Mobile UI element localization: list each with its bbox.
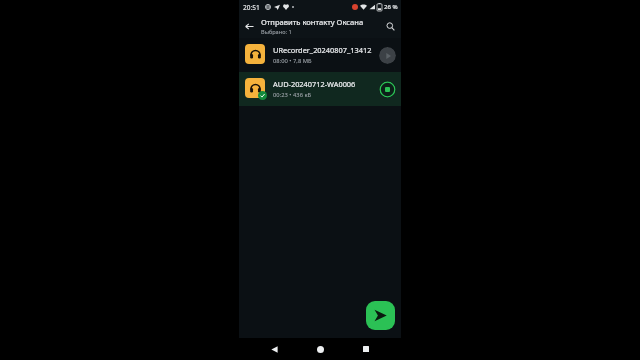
staticText: AUD-20240712-WA0006	[273, 79, 356, 89]
button[interactable]: Обзор	[355, 338, 377, 360]
staticText: URecorder_20240807_134121	[273, 45, 375, 55]
staticText: Отправить контакту Оксана	[261, 17, 364, 27]
button[interactable]: Назад	[240, 17, 258, 35]
button[interactable]: Главный экран	[309, 338, 331, 360]
button[interactable]: Назад	[263, 338, 285, 360]
button[interactable]: Поиск	[381, 17, 399, 35]
staticText: Выбрано: 1	[261, 28, 292, 36]
button[interactable]: AUD-20240712-WA0006	[239, 72, 401, 106]
staticText: 26 %	[384, 3, 398, 11]
button[interactable]: Воспроизвести	[379, 47, 396, 64]
staticText: 00:23 • 436 кБ	[273, 91, 312, 99]
button[interactable]: Стоп	[379, 81, 396, 98]
button[interactable]: URecorder_20240807_134121	[239, 38, 401, 72]
staticText: 20:51	[243, 3, 260, 12]
staticText: 08:00 • 7,8 МБ	[273, 57, 312, 65]
button[interactable]: Отправить	[366, 301, 395, 330]
